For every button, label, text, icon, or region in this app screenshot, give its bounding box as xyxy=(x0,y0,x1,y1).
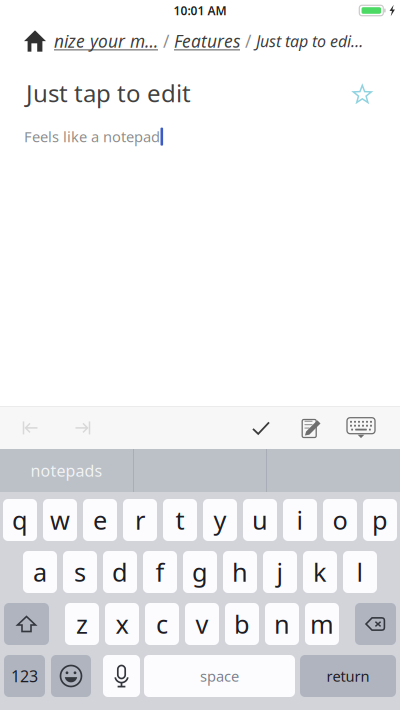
staticText: r xyxy=(135,503,145,537)
staticText: space xyxy=(200,666,239,686)
button[interactable]: c xyxy=(145,603,179,645)
button[interactable]: Home xyxy=(24,30,54,52)
staticText: e xyxy=(93,503,107,537)
button[interactable]: j xyxy=(263,551,297,593)
staticText: b xyxy=(234,607,250,641)
staticText: f xyxy=(155,555,164,589)
button[interactable]: v xyxy=(185,603,219,645)
button[interactable]: Previous field xyxy=(5,407,57,449)
staticText: q xyxy=(12,503,28,537)
button[interactable]: return xyxy=(300,655,396,697)
staticText: / xyxy=(163,29,169,52)
staticText: / xyxy=(245,29,251,52)
staticText: nize your m… xyxy=(54,29,158,52)
staticText: g xyxy=(192,555,208,589)
staticText: Just tap to edi… xyxy=(256,30,363,52)
button[interactable]: s xyxy=(63,551,97,593)
button[interactable]: q xyxy=(3,499,37,541)
staticText: l xyxy=(356,555,363,589)
button[interactable]: Numbers xyxy=(4,655,45,697)
staticText: u xyxy=(252,503,268,537)
staticText: return xyxy=(326,666,369,686)
button[interactable]: w xyxy=(43,499,77,541)
button[interactable]: g xyxy=(183,551,217,593)
button[interactable]: Next field xyxy=(57,407,109,449)
button[interactable]: Dictate xyxy=(103,655,140,697)
staticText: 123 xyxy=(11,665,38,687)
staticText: p xyxy=(372,503,388,537)
staticText: Feels like a notepad xyxy=(24,127,160,146)
button[interactable]: Shift xyxy=(4,603,49,645)
button[interactable]: b xyxy=(225,603,259,645)
button[interactable]: Features xyxy=(174,29,240,52)
button[interactable]: Edit note xyxy=(286,407,336,449)
staticText: n xyxy=(274,607,290,641)
staticText: w xyxy=(50,503,70,537)
staticText: x xyxy=(115,607,128,641)
button[interactable]: notepads xyxy=(0,449,133,492)
button[interactable]: m xyxy=(305,603,339,645)
staticText: a xyxy=(33,555,47,589)
staticText: Features xyxy=(174,29,240,52)
button[interactable]: z xyxy=(65,603,99,645)
button[interactable]: Done xyxy=(236,407,286,449)
staticText: j xyxy=(276,555,283,589)
button[interactable]: d xyxy=(103,551,137,593)
button[interactable]: x xyxy=(105,603,139,645)
staticText: c xyxy=(156,607,168,641)
button[interactable]: h xyxy=(223,551,257,593)
button[interactable]: k xyxy=(303,551,337,593)
button[interactable]: n xyxy=(265,603,299,645)
staticText: z xyxy=(76,607,88,641)
staticText: Just tap to edit xyxy=(26,77,191,109)
staticText: k xyxy=(313,555,327,589)
button[interactable]: u xyxy=(243,499,277,541)
staticText: v xyxy=(195,607,208,641)
button[interactable]: l xyxy=(343,551,377,593)
button[interactable]: Delete xyxy=(355,603,396,645)
staticText: s xyxy=(74,555,86,589)
staticText: o xyxy=(332,503,347,537)
staticText: m xyxy=(310,607,334,641)
staticText: d xyxy=(112,555,128,589)
staticText: notepads xyxy=(30,460,102,481)
button[interactable]: r xyxy=(123,499,157,541)
button[interactable]: t xyxy=(163,499,197,541)
button[interactable]: p xyxy=(363,499,397,541)
button[interactable]: o xyxy=(323,499,357,541)
button[interactable]: a xyxy=(23,551,57,593)
button[interactable]: Emoji xyxy=(51,655,91,697)
button[interactable]: i xyxy=(283,499,317,541)
button[interactable]: f xyxy=(143,551,177,593)
staticText: y xyxy=(213,503,226,537)
button[interactable]: space xyxy=(144,655,295,697)
button[interactable]: Hide keyboard xyxy=(336,407,386,449)
staticText: t xyxy=(175,503,184,537)
button[interactable]: y xyxy=(203,499,237,541)
button[interactable]: nize your m… xyxy=(54,29,158,52)
staticText: 10:01 AM xyxy=(173,2,226,18)
button[interactable]: e xyxy=(83,499,117,541)
staticText: i xyxy=(296,503,303,537)
staticText: h xyxy=(232,555,248,589)
button[interactable]: Favorite xyxy=(349,81,376,105)
